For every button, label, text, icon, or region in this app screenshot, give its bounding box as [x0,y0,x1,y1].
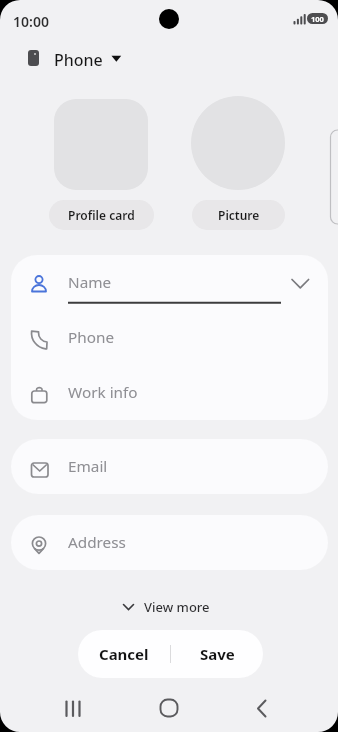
button[interactable]: Email [11,439,328,494]
button[interactable]: View more [122,598,210,616]
staticText: Address [68,532,126,553]
staticText: Phone [54,49,103,71]
staticText: Email [68,456,108,477]
staticText: Phone [68,327,115,348]
button[interactable]: Save [171,630,263,678]
button[interactable]: Picture [192,200,285,230]
button[interactable] [191,96,285,190]
button[interactable]: Phone [11,310,328,365]
staticText: View more [144,598,210,616]
staticText: Work info [68,382,138,403]
button[interactable]: Work info [11,365,328,420]
button[interactable]: Profile card [49,200,154,230]
staticText: Name [68,272,112,293]
button[interactable]: Name [11,255,328,310]
staticText: 100 [311,14,324,24]
staticText: Cancel [99,644,149,664]
staticText: 10:00 [13,12,49,31]
button[interactable]: Cancel [78,630,170,678]
staticText: Picture [218,207,260,223]
staticText: Save [200,644,235,664]
staticText: Profile card [68,207,135,223]
button[interactable] [54,99,148,190]
button[interactable]: Address [11,515,328,570]
